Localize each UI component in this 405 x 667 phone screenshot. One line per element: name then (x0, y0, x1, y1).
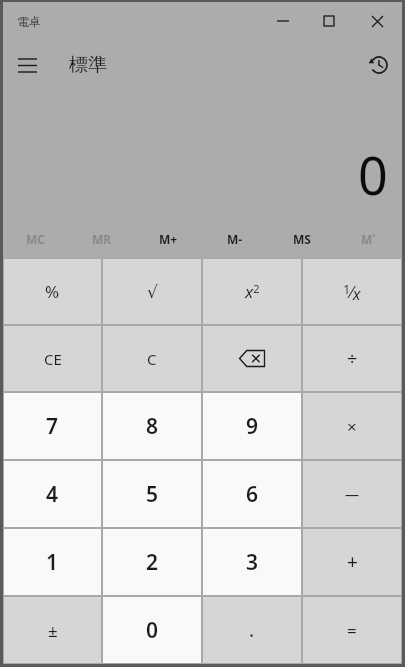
staticText: M+ (159, 231, 178, 247)
button[interactable]: 2 (103, 529, 201, 595)
button[interactable]: 7 (4, 393, 101, 459)
staticText: 8 (146, 412, 159, 441)
staticText: 2 (146, 548, 159, 577)
button[interactable]: = (303, 597, 401, 663)
button[interactable]: MS (268, 220, 335, 258)
button[interactable]: . (203, 597, 301, 663)
button[interactable]: Maximize (306, 4, 352, 38)
staticText: 電卓 (17, 14, 41, 29)
staticText: 0 (146, 616, 159, 645)
button[interactable]: ÷ (303, 326, 401, 391)
button[interactable]: 6 (203, 461, 301, 527)
button[interactable]: 1 (4, 529, 101, 595)
button[interactable]: CE (4, 326, 101, 391)
button[interactable]: 4 (4, 461, 101, 527)
staticText: % (45, 280, 60, 303)
staticText: MR (92, 231, 112, 247)
staticText: C (147, 349, 157, 369)
staticText: 4 (46, 480, 59, 509)
staticText: MC (26, 231, 46, 247)
button[interactable]: 0 (103, 597, 201, 663)
button[interactable]: 9 (203, 393, 301, 459)
staticText: — (345, 485, 359, 504)
button[interactable]: one over x (303, 259, 401, 324)
staticText: CE (44, 349, 62, 369)
button[interactable]: ± (4, 597, 101, 663)
staticText: 5 (146, 480, 159, 509)
button[interactable]: Minimize (260, 4, 306, 38)
button[interactable]: % (4, 259, 101, 324)
button[interactable]: — (303, 461, 401, 527)
button[interactable]: MC (3, 220, 69, 258)
button[interactable]: √ (103, 259, 201, 324)
button[interactable]: 5 (103, 461, 201, 527)
staticText: 9 (246, 412, 259, 441)
button[interactable]: History (356, 43, 402, 87)
button[interactable]: M- (201, 220, 268, 258)
button[interactable]: M+ (135, 220, 201, 258)
staticText: M- (227, 231, 243, 247)
staticText: ÷ (347, 346, 358, 371)
staticText: . (249, 617, 255, 643)
staticText: M˅ (361, 231, 376, 247)
staticText: = (347, 619, 357, 642)
button[interactable]: Menu (3, 43, 51, 87)
staticText: 標準 (69, 53, 107, 77)
staticText: x2 (245, 280, 260, 303)
staticText: √ (147, 282, 158, 302)
staticText: 0 (358, 139, 388, 210)
button[interactable]: C (103, 326, 201, 391)
staticText: ± (48, 619, 58, 642)
button[interactable]: × (303, 393, 401, 459)
button[interactable]: Backspace (203, 326, 301, 391)
button[interactable]: M˅ (335, 220, 402, 258)
button[interactable]: Close (352, 4, 402, 38)
button[interactable]: + (303, 529, 401, 595)
button[interactable]: 3 (203, 529, 301, 595)
staticText: 7 (46, 412, 59, 441)
staticText: × (347, 415, 357, 438)
staticText: 1⁄x (343, 280, 361, 304)
button[interactable]: x squared (203, 259, 301, 324)
staticText: + (347, 549, 358, 575)
staticText: MS (293, 231, 311, 247)
staticText: 6 (246, 480, 259, 509)
staticText: 3 (246, 548, 259, 577)
button[interactable]: 8 (103, 393, 201, 459)
staticText: 1 (46, 548, 59, 577)
button[interactable]: MR (69, 220, 135, 258)
